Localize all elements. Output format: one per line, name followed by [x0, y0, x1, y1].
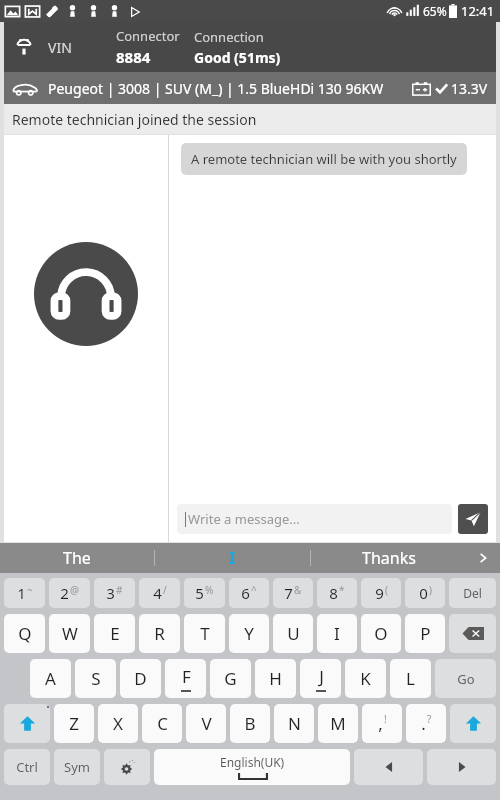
button[interactable]: Right — [427, 749, 496, 785]
button[interactable]: . — [406, 704, 446, 743]
button[interactable]: Backspace — [449, 614, 496, 653]
button[interactable]: 5 — [184, 578, 225, 608]
staticText: Write a message... — [188, 510, 300, 528]
button[interactable]: B — [230, 704, 270, 743]
button[interactable]: Z — [54, 704, 94, 743]
staticText: ) — [429, 583, 432, 597]
staticText: W — [62, 622, 78, 645]
button[interactable]: Sym — [54, 749, 100, 785]
staticText: V — [201, 712, 212, 735]
staticText: 5 — [195, 583, 204, 603]
button[interactable]: 4 — [139, 578, 180, 608]
button[interactable]: C — [142, 704, 182, 743]
button[interactable]: Ctrl — [4, 749, 50, 785]
button[interactable]: N — [274, 704, 314, 743]
button[interactable]: More suggestions — [466, 543, 500, 573]
button[interactable]: D — [120, 659, 161, 698]
staticText: B — [244, 712, 256, 735]
button[interactable]: Space — [154, 749, 350, 785]
button[interactable]: 3 — [94, 578, 135, 608]
staticText: Connector — [116, 27, 180, 45]
button[interactable]: G — [210, 659, 251, 698]
button[interactable]: , — [362, 704, 402, 743]
button[interactable]: Q — [4, 614, 45, 653]
button[interactable]: P — [405, 614, 445, 653]
staticText: L — [406, 667, 415, 690]
staticText: 6 — [241, 583, 250, 603]
button[interactable]: F — [165, 659, 206, 698]
staticText: I — [229, 547, 236, 569]
staticText: VIN — [48, 38, 72, 57]
button[interactable]: W — [49, 614, 90, 653]
button[interactable]: E — [94, 614, 135, 653]
button[interactable]: 1 — [4, 578, 45, 608]
staticText: A — [45, 667, 56, 690]
staticText: U — [287, 622, 300, 645]
staticText: 3 — [106, 583, 115, 603]
button[interactable]: U — [273, 614, 313, 653]
staticText: Peugeot | 3008 | SUV (M_) | 1.5 BlueHDi … — [48, 79, 384, 98]
staticText: R — [154, 622, 165, 645]
staticText: Remote technician joined the session — [12, 110, 257, 129]
button[interactable]: L — [390, 659, 431, 698]
staticText: 0 — [419, 583, 428, 603]
staticText: X — [113, 712, 123, 735]
staticText: @ — [70, 583, 79, 597]
button[interactable]: 8 — [317, 578, 357, 608]
staticText: % — [205, 583, 214, 597]
staticText: ( — [385, 583, 388, 597]
staticText: T — [200, 622, 210, 645]
button[interactable]: The — [0, 543, 154, 573]
button[interactable]: Keyboard settings — [104, 749, 150, 785]
staticText: ! — [384, 712, 387, 726]
staticText: / — [163, 583, 167, 597]
button[interactable]: I — [155, 543, 310, 573]
staticText: J — [319, 665, 324, 688]
button[interactable]: Go — [435, 659, 496, 698]
button[interactable]: Y — [229, 614, 269, 653]
staticText: 12:41 — [461, 2, 495, 20]
staticText: 7 — [284, 583, 293, 603]
button[interactable]: Send — [458, 504, 488, 534]
button[interactable]: 9 — [361, 578, 401, 608]
staticText: O — [374, 622, 388, 645]
button[interactable]: Left — [354, 749, 423, 785]
button[interactable]: Thanks — [311, 543, 466, 573]
staticText: I — [334, 622, 340, 645]
staticText: , — [378, 712, 383, 735]
button[interactable]: Shift — [4, 704, 50, 743]
button[interactable]: 7 — [273, 578, 313, 608]
button[interactable]: 6 — [229, 578, 269, 608]
staticText: ^ — [251, 583, 257, 597]
staticText: . — [421, 712, 426, 735]
button[interactable]: T — [184, 614, 225, 653]
staticText: 13.3V — [451, 79, 488, 98]
staticText: D — [134, 667, 147, 690]
button[interactable]: K — [345, 659, 386, 698]
button[interactable]: 0 — [405, 578, 445, 608]
button[interactable]: A — [30, 659, 71, 698]
button[interactable]: X — [98, 704, 138, 743]
staticText: Good (51ms) — [194, 48, 281, 67]
button[interactable]: S — [75, 659, 116, 698]
staticText: S — [91, 667, 101, 690]
staticText: 4 — [153, 583, 162, 603]
staticText: Connection — [194, 28, 264, 46]
button[interactable]: O — [361, 614, 401, 653]
staticText: * — [339, 583, 345, 597]
button[interactable]: M — [318, 704, 358, 743]
button[interactable]: R — [139, 614, 180, 653]
button[interactable]: I — [317, 614, 357, 653]
button[interactable]: Write a message... — [177, 504, 452, 534]
staticText: G — [224, 667, 237, 690]
staticText: & — [294, 583, 302, 597]
button[interactable]: H — [255, 659, 296, 698]
button[interactable]: Del — [449, 578, 496, 608]
button[interactable]: Shift lock — [450, 704, 496, 743]
staticText: # — [116, 583, 123, 597]
button[interactable]: J — [300, 659, 341, 698]
button[interactable]: V — [186, 704, 226, 743]
staticText: ~ — [27, 583, 33, 597]
staticText: E — [110, 622, 120, 645]
button[interactable]: 2 — [49, 578, 90, 608]
